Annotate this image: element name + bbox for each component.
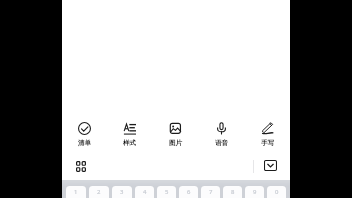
button[interactable]: 1 [66,186,86,198]
staticText: 4 [143,188,147,196]
button[interactable]: 9 [245,186,264,198]
button[interactable]: 清单 [62,122,107,147]
staticText: 8 [231,188,235,196]
button[interactable]: 2 [89,186,109,198]
button[interactable]: 语音 [198,122,244,147]
staticText: 手写 [261,139,274,147]
button[interactable]: 5 [157,186,176,198]
staticText: 2 [97,188,101,196]
staticText: 清单 [78,139,91,147]
staticText: 6 [187,188,191,196]
staticText: 0 [275,188,279,196]
staticText: 9 [253,188,257,196]
button[interactable]: 0 [267,186,286,198]
staticText: 样式 [123,139,136,147]
button[interactable]: 6 [179,186,198,198]
button[interactable]: Hide keyboard [259,155,281,177]
staticText: 语音 [215,139,228,147]
button[interactable]: 3 [112,186,132,198]
staticText: 5 [165,188,169,196]
button[interactable]: Keyboard layout [70,155,92,177]
button[interactable]: 7 [201,186,220,198]
button[interactable]: 样式 [107,122,152,147]
staticText: 3 [120,188,124,196]
staticText: 图片 [169,139,182,147]
button[interactable]: 8 [223,186,242,198]
button[interactable]: 手写 [244,122,290,147]
button[interactable]: 4 [135,186,154,198]
staticText: 1 [74,188,78,196]
staticText: 7 [209,188,213,196]
button[interactable]: 图片 [152,122,198,147]
